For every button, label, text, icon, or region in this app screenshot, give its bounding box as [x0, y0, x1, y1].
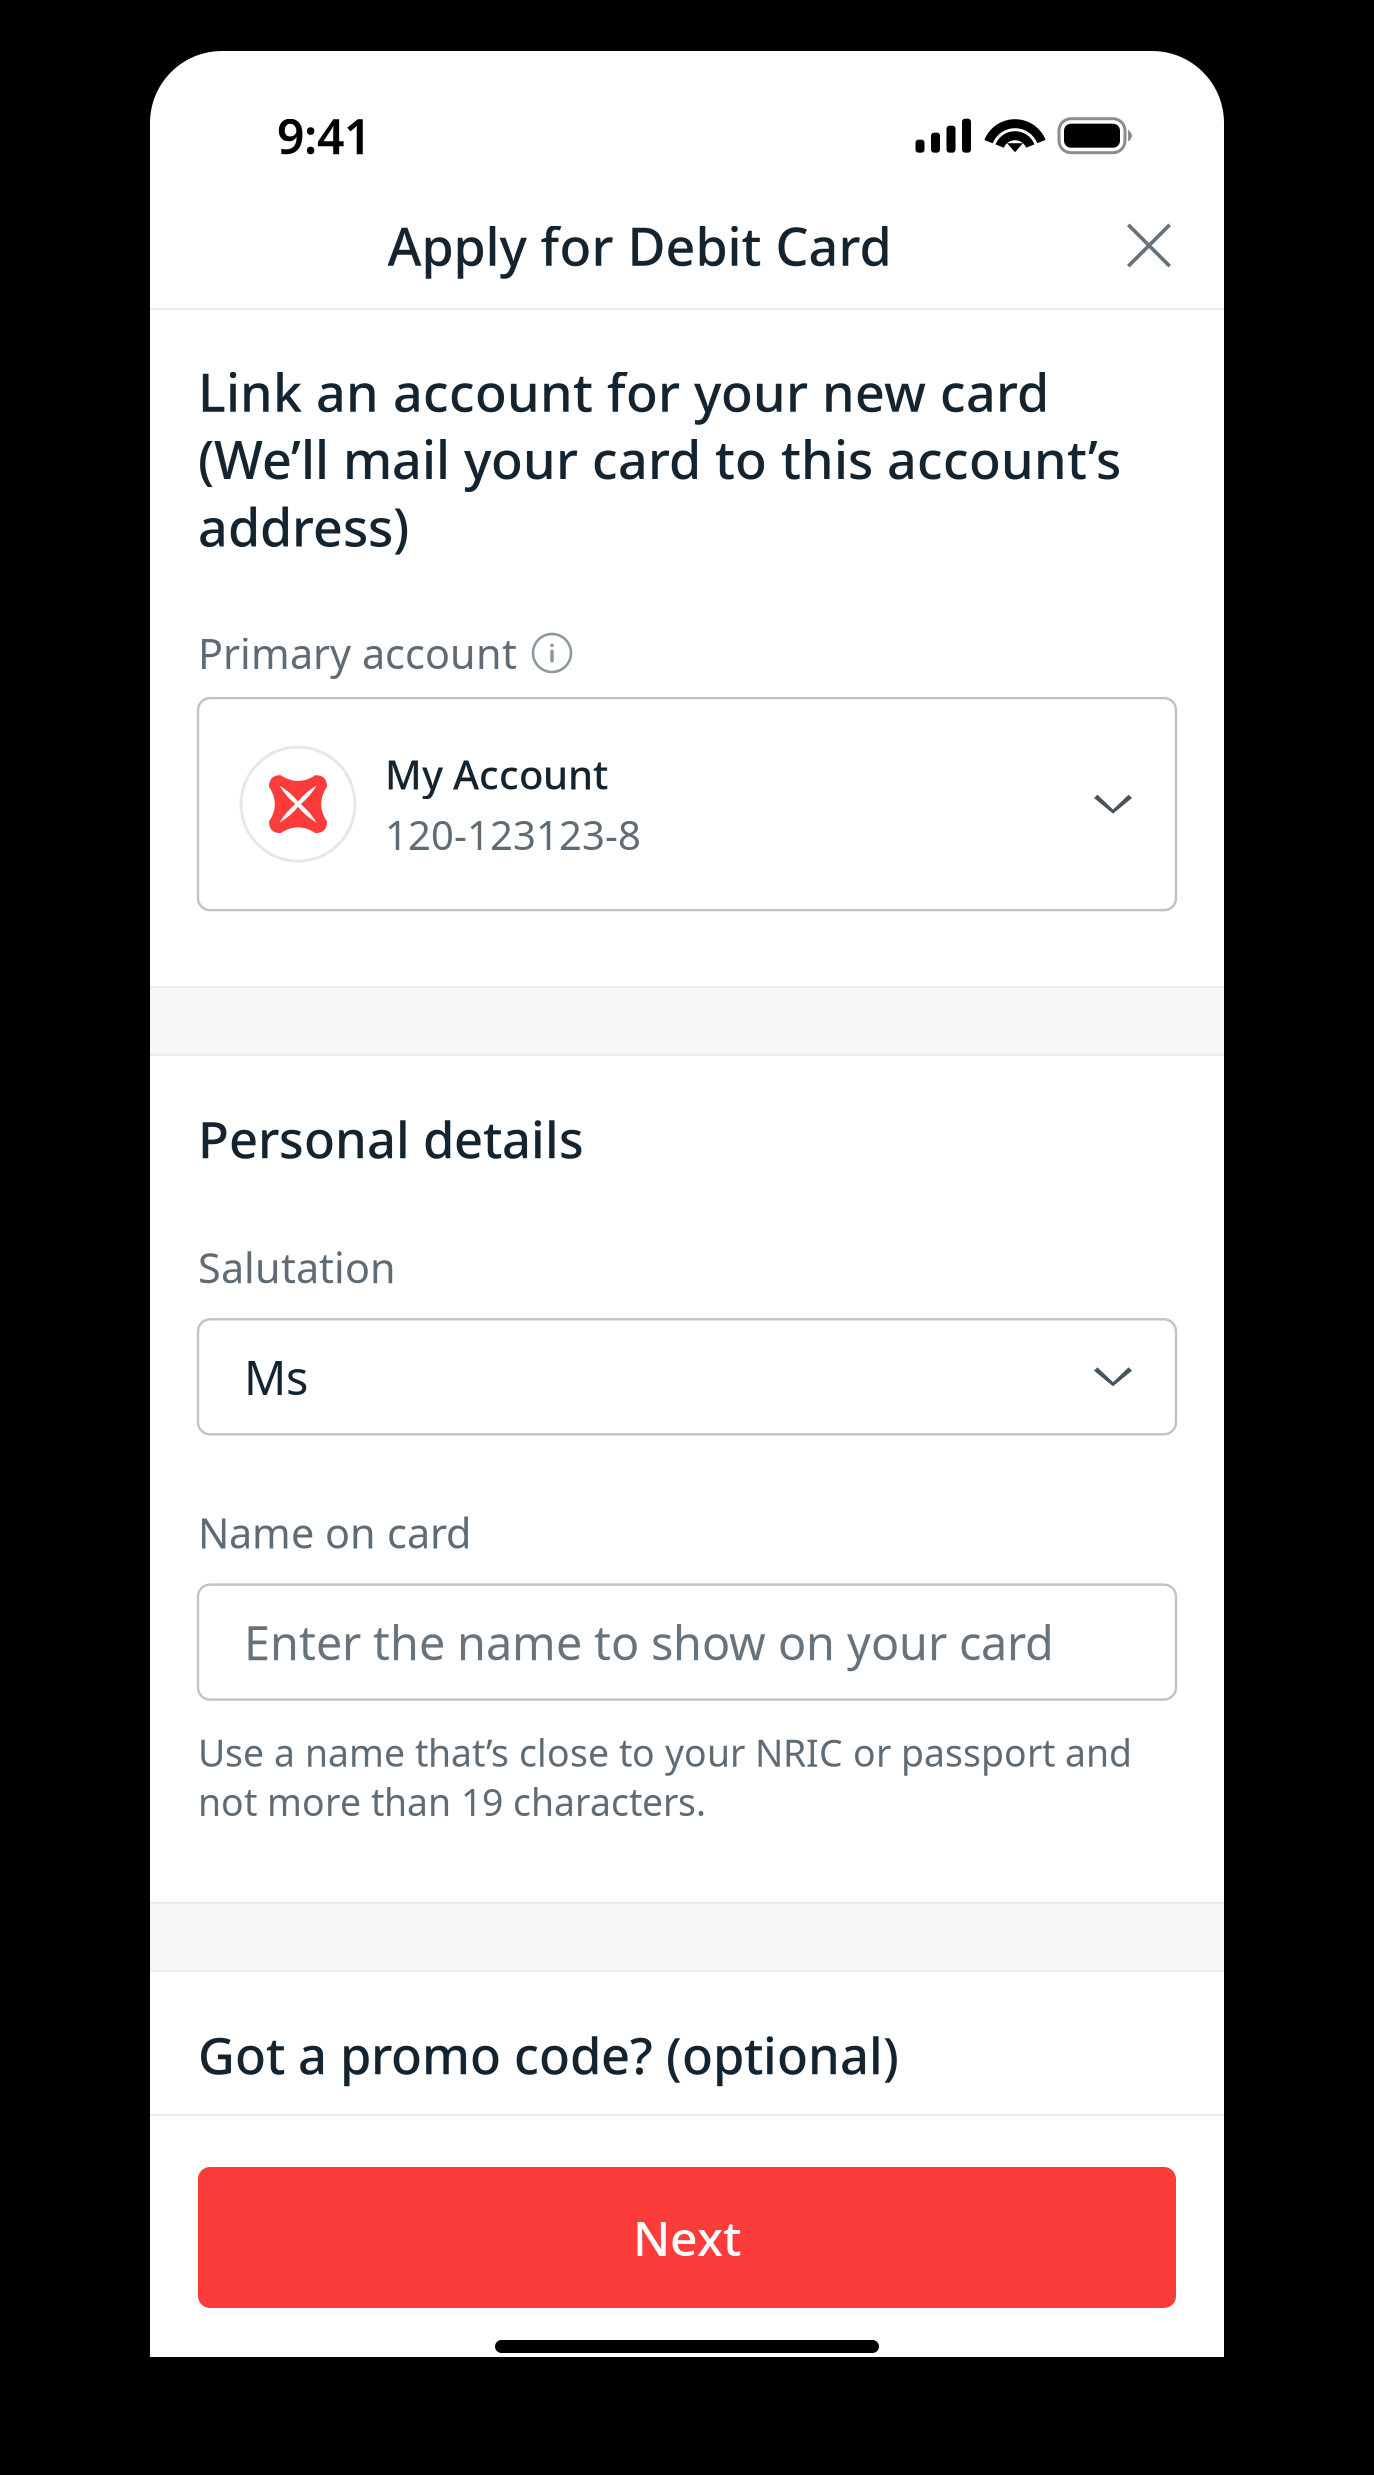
button[interactable]: Close: [1101, 199, 1224, 291]
button[interactable]: Enter the name to show on your card: [198, 1585, 1176, 1700]
staticText: My Account: [385, 747, 608, 801]
staticText: Ms: [244, 1345, 308, 1409]
staticText: Primary account: [198, 625, 517, 681]
button[interactable]: Ms: [198, 1319, 1176, 1434]
staticText: Got a promo code? (optional): [198, 2020, 899, 2089]
staticText: Link an account for your new card (We’ll…: [198, 358, 1121, 560]
staticText: Salutation: [198, 1239, 396, 1295]
staticText: Apply for Debit Card: [387, 210, 891, 281]
staticText: Use a name that’s close to your NRIC or …: [198, 1728, 1132, 1826]
staticText: 120-123123-8: [385, 807, 641, 862]
staticText: Enter the name to show on your card: [244, 1610, 1054, 1674]
staticText: Personal details: [198, 1104, 584, 1173]
staticText: Next: [633, 2205, 741, 2270]
staticText: Name on card: [198, 1504, 471, 1561]
button[interactable]: My Account: [198, 698, 1176, 910]
button[interactable]: Next: [198, 2167, 1176, 2308]
staticText: 9:41: [277, 103, 371, 168]
